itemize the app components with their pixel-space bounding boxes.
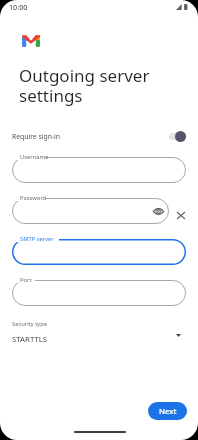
staticText: Username [20,153,49,161]
staticText: Port [20,276,32,284]
staticText: Require sign-in [12,132,60,141]
button[interactable]: Clear password [174,208,188,222]
button[interactable]: Port [12,280,186,306]
staticText: Security type [12,320,48,328]
staticText: Next [159,406,177,417]
button[interactable]: Username [12,157,186,183]
button[interactable]: Security type [0,316,198,350]
button[interactable]: SMTP server [12,239,186,265]
staticText: Outgoing server settings [19,64,169,107]
staticText: 10:00 [9,2,28,12]
button[interactable]: Require sign-in [0,125,198,147]
button[interactable]: Password [12,198,169,224]
staticText: Password [20,194,47,202]
button[interactable]: Next [148,402,187,420]
button[interactable]: Show password [152,205,165,218]
staticText: SMTP server [20,235,54,243]
staticText: STARTTLS [12,334,48,345]
